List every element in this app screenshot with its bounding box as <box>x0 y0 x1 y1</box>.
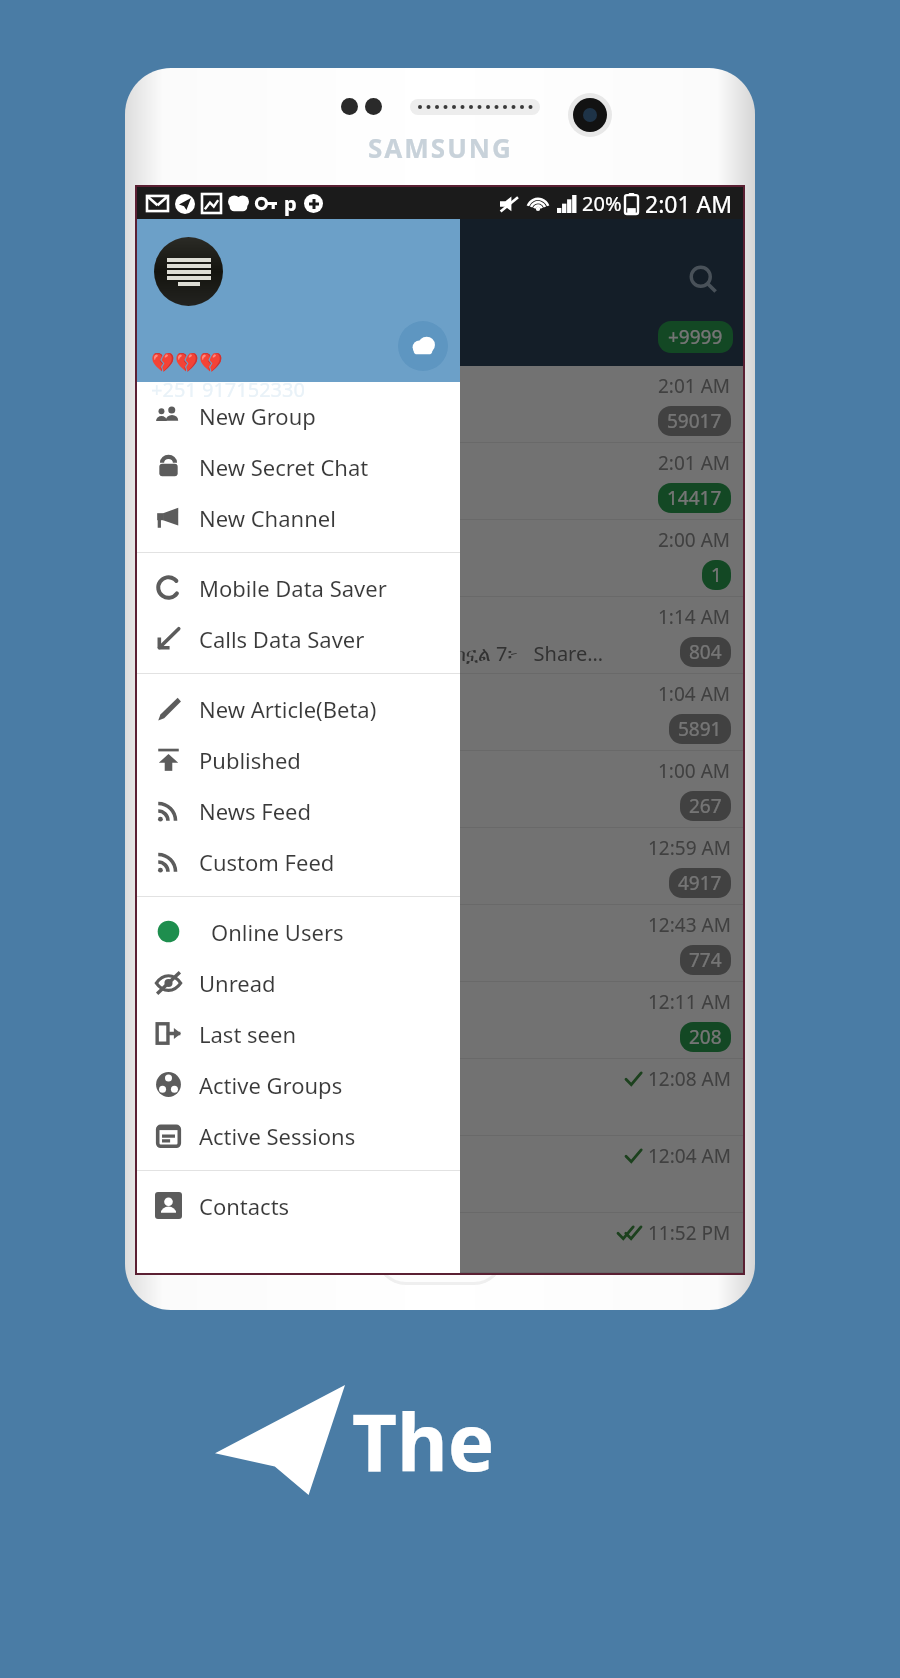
staticText: he correct answer was… <box>145 486 383 515</box>
button[interactable]: New Channel <box>137 492 460 543</box>
staticText: 267 <box>689 793 722 819</box>
staticText: Contacts <box>199 1191 290 1221</box>
button[interactable]: Active Groups <box>137 1059 460 1110</box>
staticText: Mobile Data Saver <box>199 573 387 603</box>
button[interactable]: 1:00 AM <box>137 751 743 828</box>
staticText: 12:59 AM <box>648 835 731 861</box>
button[interactable]: 12:08 AM <box>137 1059 743 1136</box>
staticText: ght in the class. Mathemati… <box>145 1025 429 1054</box>
staticText: Active Groups <box>199 1070 343 1100</box>
staticText: 1:00 AM <box>658 758 731 784</box>
staticText: New Channel <box>199 503 336 533</box>
staticText: 1 <box>711 562 722 588</box>
button[interactable]: Published <box>137 734 460 785</box>
button[interactable]: 12:11 AM <box>137 982 743 1059</box>
button[interactable]: Calls Data Saver <box>137 613 460 664</box>
staticText: +251 917152330 <box>151 376 305 403</box>
button[interactable]: 11:52 PM <box>137 1213 743 1273</box>
staticText: New Article(Beta) <box>199 694 377 724</box>
staticText: 774 <box>689 947 722 973</box>
staticText: ወሲብ ወሲብ ወሲብ 💝ወሲብ… <box>145 948 400 977</box>
staticText: 4917 <box>678 870 722 896</box>
button[interactable]: News Feed <box>137 785 460 836</box>
staticText: can be used to log in to your… <box>145 563 445 592</box>
staticText: 804 <box>689 639 722 665</box>
staticText: 20% <box>582 190 622 217</box>
staticText: 1:14 AM <box>658 604 731 630</box>
staticText: 1:04 AM <box>658 681 731 707</box>
staticText: The <box>352 1388 495 1494</box>
staticText: your friends the… <box>145 638 349 669</box>
staticText: p <box>284 190 297 217</box>
staticText: Custom Feed <box>199 847 335 877</box>
button[interactable]: Mobile Data Saver <box>137 562 460 613</box>
button[interactable]: 12:04 AM <box>137 1136 743 1213</box>
staticText: Online Users <box>211 917 344 947</box>
staticText: Last seen <box>199 1019 297 1049</box>
button[interactable]: New Secret Chat <box>137 441 460 492</box>
staticText: 5891 <box>678 716 722 742</box>
staticText: 💔 <box>151 351 175 373</box>
button[interactable]: 12:43 AM <box>137 905 743 982</box>
button[interactable]: Toggle accounts <box>398 321 448 371</box>
button[interactable]: 1:14 AM <box>137 597 743 674</box>
staticText: News Feed <box>199 796 312 826</box>
button[interactable]: Last seen <box>137 1008 460 1059</box>
staticText: 12:11 AM <box>648 989 731 1015</box>
staticText: 💔 <box>175 351 199 373</box>
staticText: nal. Kegnagar bemesrath… <box>145 717 412 746</box>
staticText: ረ ልዑጡ 👉ከኗል 7፦ Share… <box>371 640 604 667</box>
staticText: Active Sessions <box>199 1121 356 1151</box>
staticText: 208 <box>689 1024 722 1050</box>
button[interactable]: 2:01 AM <box>137 443 743 520</box>
staticText: @EyuCa1 @Debo… <box>145 407 355 438</box>
staticText: Calls Data Saver <box>199 624 365 654</box>
button[interactable]: Contacts <box>137 1180 460 1231</box>
staticText: SAMSUNG <box>368 130 513 165</box>
button[interactable]: Active Sessions <box>137 1110 460 1161</box>
staticText: 2:01 AM <box>658 450 731 476</box>
staticText: 2:01 AM <box>658 373 731 399</box>
staticText: 2:01 AM <box>645 188 733 219</box>
button[interactable]: Online Users <box>137 906 460 957</box>
button[interactable]: 12:59 AM <box>137 828 743 905</box>
staticText: 12:04 AM <box>648 1143 731 1169</box>
button[interactable]: Custom Feed <box>137 836 460 887</box>
staticText: 11:52 PM <box>648 1220 731 1246</box>
staticText: 59017 <box>667 408 722 434</box>
staticText: Unread <box>199 968 276 998</box>
button[interactable]: New Group <box>137 390 460 441</box>
staticText: 14417 <box>667 485 722 511</box>
staticText: +9999 <box>668 324 723 350</box>
button[interactable]: Unread <box>137 957 460 1008</box>
button[interactable]: 2:00 AM <box>137 520 743 597</box>
staticText: New Secret Chat <box>199 452 369 482</box>
staticText: 2:00 AM <box>658 527 731 553</box>
button[interactable]: New Article(Beta) <box>137 683 460 734</box>
staticText: 12:08 AM <box>648 1066 731 1092</box>
staticText: New Group <box>199 401 316 431</box>
staticText: Published <box>199 745 301 775</box>
staticText: 💔 <box>199 351 223 373</box>
button[interactable]: 1:04 AM <box>137 674 743 751</box>
staticText: 12:43 AM <box>648 912 731 938</box>
button[interactable]: 2:01 AM <box>137 366 743 443</box>
